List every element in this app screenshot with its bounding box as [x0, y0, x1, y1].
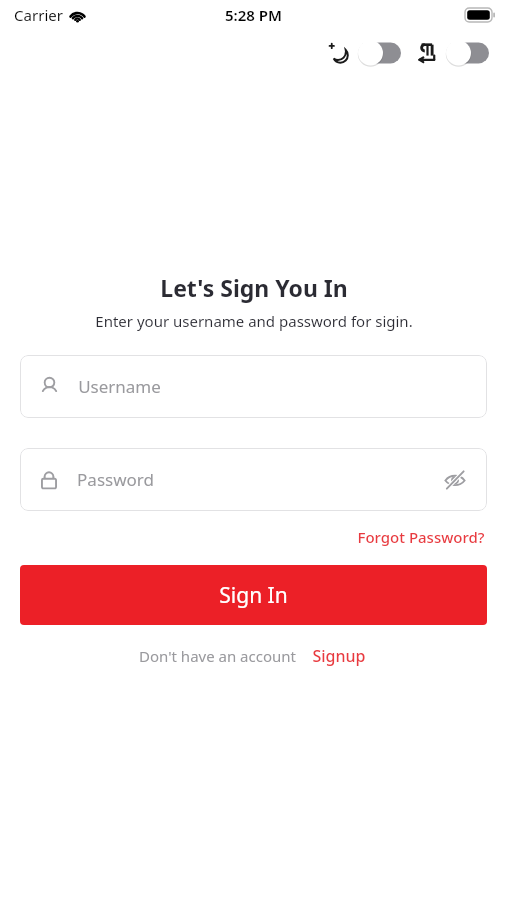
button[interactable]: Forgot Password?	[355, 525, 487, 549]
button[interactable]: Password	[20, 448, 487, 511]
button[interactable]: Show password	[439, 464, 471, 496]
staticText: Carrier	[14, 5, 63, 25]
staticText: 5:28 PM	[225, 5, 282, 25]
staticText: Sign In	[219, 581, 288, 610]
button[interactable]: Toggle text direction	[417, 40, 489, 66]
staticText: Let's Sign You In	[160, 272, 348, 303]
staticText: Enter your username and password for sig…	[95, 311, 413, 331]
button[interactable]: Username	[20, 355, 487, 418]
staticText: Password	[77, 468, 154, 491]
staticText: Forgot Password?	[357, 527, 485, 547]
button[interactable]: Toggle dark mode	[328, 40, 401, 66]
button[interactable]: Signup	[310, 643, 368, 669]
staticText: Signup	[312, 645, 366, 667]
button[interactable]: Sign In	[20, 565, 487, 625]
staticText: Don't have an account	[139, 646, 296, 666]
staticText: Username	[78, 375, 161, 398]
